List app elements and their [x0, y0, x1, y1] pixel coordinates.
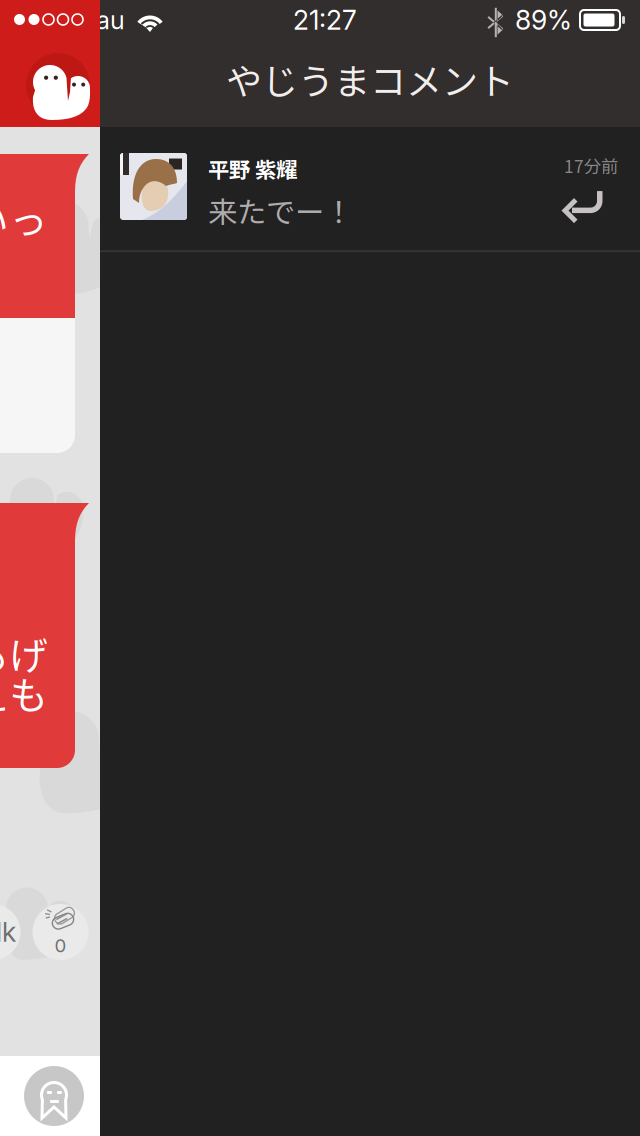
- staticText: 89%: [515, 4, 572, 36]
- staticText: いっ: [0, 190, 48, 246]
- button[interactable]: Talk: [0, 904, 23, 960]
- staticText: alk: [0, 916, 16, 948]
- button[interactable]: 平野 紫耀: [100, 127, 640, 252]
- staticText: 21:27: [293, 4, 357, 36]
- staticText: 平野 紫耀: [208, 153, 297, 184]
- staticText: au: [96, 5, 125, 35]
- staticText: えも: [0, 665, 48, 721]
- staticText: 来たでー！: [208, 189, 353, 231]
- staticText: 17分前: [564, 153, 618, 178]
- button[interactable]: Profile: [24, 1066, 84, 1126]
- staticText: やじうまコメント: [226, 53, 514, 105]
- button[interactable]: Clap: [30, 904, 91, 960]
- staticText: 0: [54, 934, 66, 957]
- staticText: もげ: [0, 625, 48, 681]
